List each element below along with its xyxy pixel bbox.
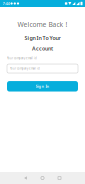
staticText: Sign In — [35, 84, 49, 89]
button[interactable]: Sign In — [7, 81, 78, 92]
staticText: 7:44 — [2, 1, 9, 6]
staticText: Sign In To Your — [24, 34, 60, 41]
staticText: Your company email id — [10, 67, 40, 70]
staticText: Welcome Back ! — [17, 20, 67, 29]
button[interactable]: Home — [34, 172, 51, 184]
button[interactable]: Back — [17, 172, 34, 184]
button[interactable]: Recent apps — [51, 172, 68, 184]
staticText: Account — [32, 45, 53, 52]
staticText: Your company email id — [7, 56, 37, 60]
